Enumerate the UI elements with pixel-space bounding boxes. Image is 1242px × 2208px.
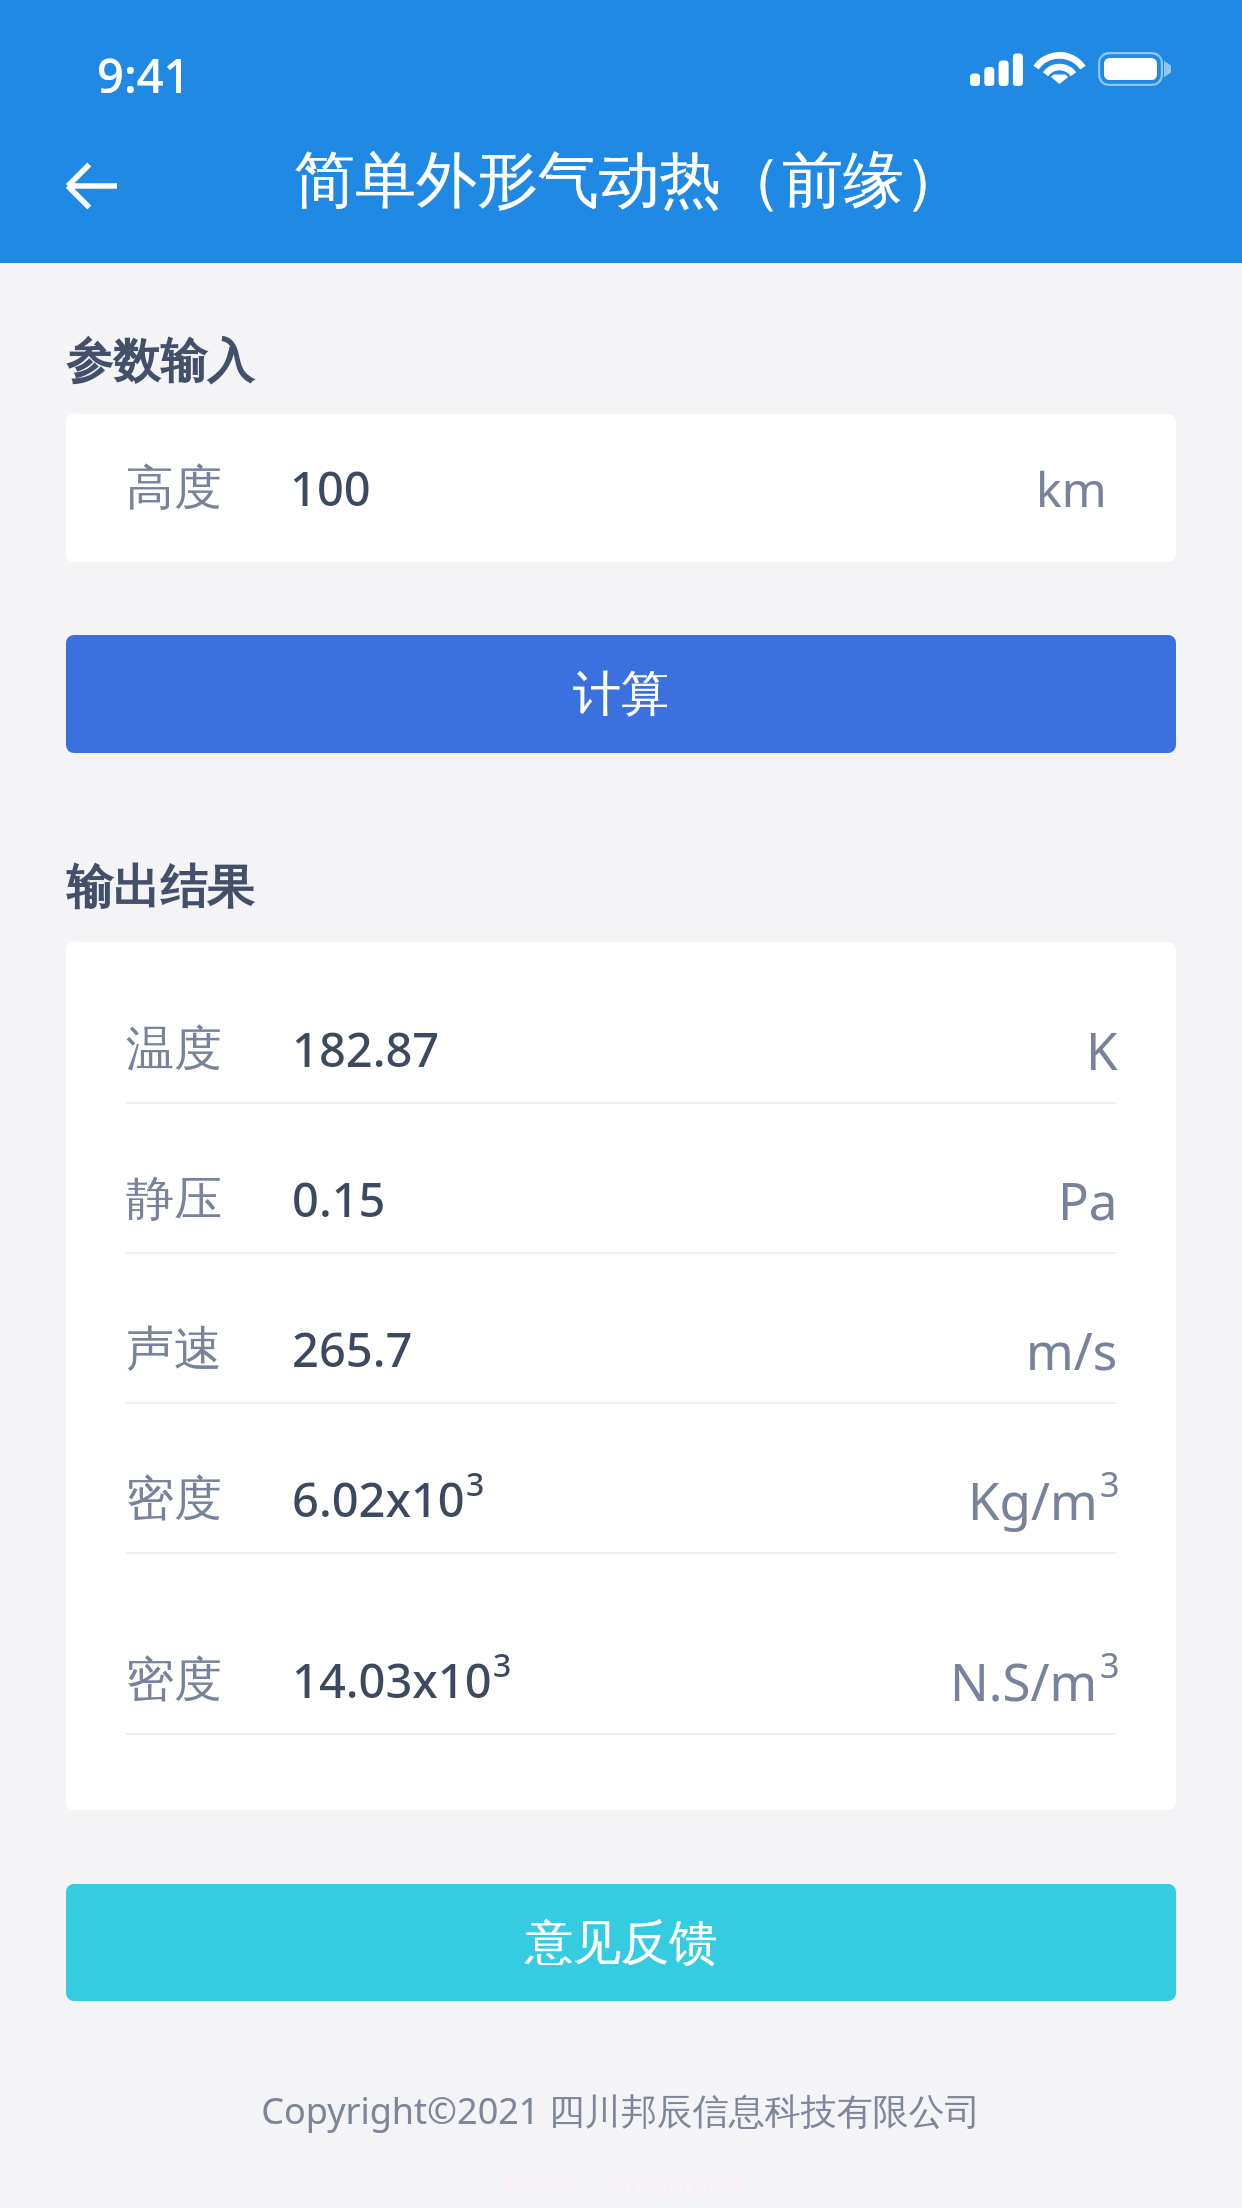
staticText: 计算 — [573, 664, 669, 724]
staticText: 声速 — [126, 1319, 222, 1379]
staticText: 静压 — [126, 1169, 222, 1229]
staticText: m/s — [1026, 1315, 1118, 1384]
staticText: Copyright©2021 四川邦辰信息科技有限公司 — [0, 2086, 1242, 2135]
button[interactable]: 计算 — [66, 635, 1176, 753]
button[interactable]: 意见反馈 — [66, 1884, 1176, 2001]
staticText: 意见反馈 — [525, 1913, 717, 1973]
staticText: 100 — [290, 456, 371, 520]
button[interactable] — [66, 1104, 1176, 1252]
staticText: 6.02x10 — [292, 1467, 465, 1531]
staticText: Pa — [1058, 1165, 1118, 1234]
staticText: km — [1036, 456, 1107, 521]
staticText: 参数输入 — [66, 332, 254, 391]
staticText: 温度 — [126, 1019, 222, 1079]
staticText: 3 — [493, 1643, 512, 1687]
staticText: 简单外形气动热（前缘） — [294, 142, 965, 219]
button[interactable]: Back — [36, 156, 146, 216]
button[interactable] — [66, 1254, 1176, 1402]
staticText: 0.15 — [292, 1167, 386, 1231]
staticText: 输出结果 — [66, 858, 254, 917]
button[interactable] — [66, 942, 1176, 1102]
staticText: 265.7 — [292, 1317, 413, 1381]
staticText: 密度 — [126, 1650, 222, 1710]
staticText: 9:41 — [97, 43, 191, 107]
staticText: 14.03x10 — [292, 1648, 492, 1712]
button[interactable] — [66, 1404, 1176, 1552]
staticText: 182.87 — [292, 1017, 440, 1081]
staticText: N.S/m — [950, 1646, 1098, 1715]
staticText: Kg/m — [968, 1465, 1098, 1534]
staticText: 3 — [1100, 1461, 1120, 1507]
staticText: 3 — [466, 1462, 485, 1506]
staticText: 高度 — [126, 458, 222, 518]
button[interactable] — [66, 1554, 1176, 1733]
button[interactable]: 高度 — [66, 414, 1176, 562]
staticText: 3 — [1100, 1642, 1120, 1688]
staticText: 密度 — [126, 1469, 222, 1529]
staticText: K — [1086, 1015, 1118, 1084]
